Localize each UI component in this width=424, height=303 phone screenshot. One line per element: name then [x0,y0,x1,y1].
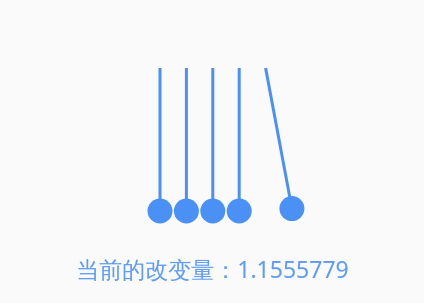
staticText: 当前的改变量：1.1555779 [76,253,349,284]
